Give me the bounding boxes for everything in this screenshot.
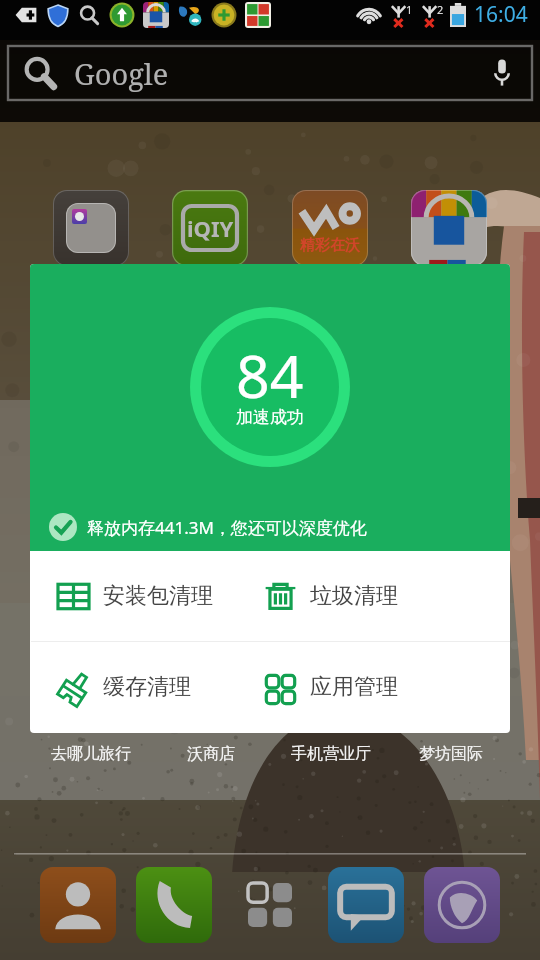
- other: Voice search: [494, 59, 510, 87]
- button[interactable]: Contacts: [40, 867, 116, 943]
- staticText: 释放内存441.3M，您还可以深度优化: [87, 516, 367, 539]
- button[interactable]: Wo: [292, 190, 368, 266]
- staticText: 加速成功: [236, 407, 304, 428]
- staticText: 垃圾清理: [310, 582, 398, 610]
- staticText: 缓存清理: [103, 673, 191, 701]
- button[interactable]: Phone: [136, 867, 212, 943]
- staticText: 应用管理: [310, 673, 398, 701]
- button[interactable]: 去哪儿旅行: [51, 744, 131, 764]
- button[interactable]: Messaging: [328, 867, 404, 943]
- staticText: Google: [74, 54, 169, 93]
- button[interactable]: 垃圾清理: [264, 551, 510, 641]
- button[interactable]: 应用管理: [264, 642, 510, 732]
- button[interactable]: Folder: [53, 190, 129, 266]
- staticText: 2: [437, 2, 444, 17]
- button[interactable]: 手机营业厅: [291, 744, 371, 764]
- button[interactable]: 安装包清理: [30, 551, 264, 641]
- button[interactable]: App store: [411, 190, 487, 266]
- staticText: iQIY: [187, 213, 234, 243]
- button[interactable]: Google: [8, 46, 532, 100]
- button[interactable]: 缓存清理: [30, 642, 264, 732]
- button[interactable]: 沃商店: [187, 744, 235, 764]
- staticText: 84: [236, 335, 304, 415]
- staticText: 1: [406, 2, 413, 17]
- button[interactable]: Browser: [424, 867, 500, 943]
- button[interactable]: 梦坊国际: [419, 744, 483, 764]
- staticText: 16:04: [474, 0, 528, 29]
- staticText: 精彩在沃: [300, 236, 360, 255]
- button[interactable]: All apps: [232, 867, 308, 943]
- staticText: 安装包清理: [103, 582, 213, 610]
- button[interactable]: iQIYI: [172, 190, 248, 266]
